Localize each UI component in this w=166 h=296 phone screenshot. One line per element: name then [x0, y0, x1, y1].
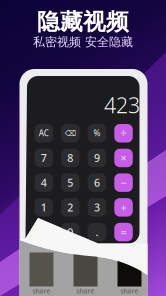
staticText: 0: [67, 225, 73, 239]
button[interactable]: 0: [61, 223, 80, 241]
staticText: share: [32, 287, 50, 295]
button[interactable]: =: [114, 223, 133, 241]
button[interactable]: 5: [61, 173, 80, 192]
staticText: 4: [41, 176, 47, 190]
button[interactable]: %: [88, 124, 106, 142]
staticText: 423: [104, 91, 140, 119]
button[interactable]: ⌫: [61, 124, 80, 142]
button[interactable]: ×: [114, 149, 133, 167]
staticText: 7: [41, 151, 47, 165]
button[interactable]: 1: [34, 198, 53, 217]
staticText: 8: [67, 151, 73, 165]
button[interactable]: 8: [61, 149, 80, 167]
staticText: −: [121, 176, 127, 190]
button[interactable]: AC: [34, 124, 53, 142]
staticText: 9: [94, 151, 100, 165]
staticText: +: [121, 200, 127, 214]
staticText: 3: [94, 200, 100, 214]
button[interactable]: 9: [88, 149, 106, 167]
button[interactable]: share: [73, 252, 97, 296]
staticText: %: [93, 128, 100, 138]
staticText: ⌫: [65, 129, 76, 138]
staticText: 5: [67, 176, 73, 190]
button[interactable]: ±: [34, 223, 53, 241]
staticText: AC: [39, 128, 49, 138]
button[interactable]: share: [117, 252, 141, 296]
staticText: =: [121, 225, 127, 239]
button[interactable]: 2: [61, 198, 80, 217]
staticText: ×: [121, 151, 127, 165]
button[interactable]: 3: [88, 198, 106, 217]
staticText: 1: [41, 200, 47, 214]
button[interactable]: 6: [88, 173, 106, 192]
button[interactable]: ÷: [114, 124, 133, 142]
button[interactable]: 7: [34, 149, 53, 167]
button[interactable]: share: [29, 252, 53, 296]
staticText: ÷: [121, 126, 127, 140]
staticText: share: [120, 287, 138, 295]
staticText: 6: [94, 176, 100, 190]
button[interactable]: +: [114, 198, 133, 217]
staticText: share: [76, 287, 94, 295]
staticText: .: [95, 225, 98, 239]
button[interactable]: −: [114, 173, 133, 192]
staticText: 私密视频 安全隐藏: [33, 35, 133, 49]
staticText: 2: [67, 200, 73, 214]
staticText: 隐藏视频: [37, 8, 129, 36]
button[interactable]: .: [88, 223, 106, 241]
button[interactable]: 4: [34, 173, 53, 192]
